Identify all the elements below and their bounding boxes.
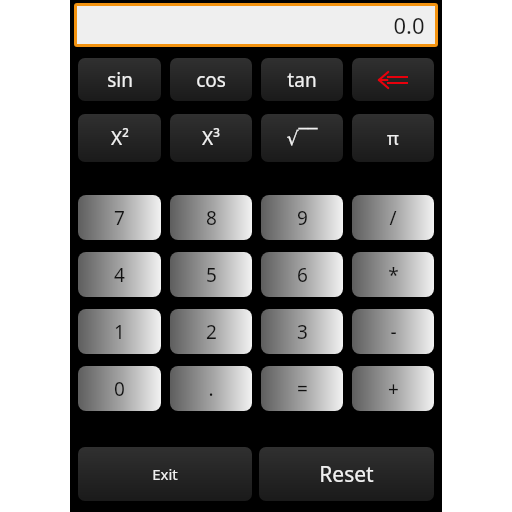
staticText: 9 <box>297 205 308 231</box>
staticText: 7 <box>114 205 125 231</box>
button[interactable]: sin <box>78 58 161 101</box>
button[interactable]: 4 <box>78 252 161 297</box>
button[interactable]: 9 <box>261 195 343 240</box>
button[interactable]: tan <box>261 58 343 101</box>
button[interactable]: X² <box>78 114 161 162</box>
button[interactable]: . <box>170 366 252 411</box>
staticText: Exit <box>152 464 178 484</box>
staticText: √¯¯ <box>286 125 318 151</box>
staticText: + <box>388 376 399 402</box>
staticText: 5 <box>206 262 217 288</box>
button[interactable]: π <box>352 114 434 162</box>
staticText: 2 <box>206 319 217 345</box>
staticText: sin <box>107 67 133 93</box>
button[interactable]: = <box>261 366 343 411</box>
staticText: π <box>387 126 399 151</box>
button[interactable]: 2 <box>170 309 252 354</box>
button[interactable]: / <box>352 195 434 240</box>
staticText: * <box>388 262 399 288</box>
staticText: cos <box>196 67 226 93</box>
staticText: / <box>389 205 397 231</box>
button[interactable]: √¯¯ <box>261 114 343 162</box>
staticText: 8 <box>206 205 217 231</box>
staticText: 0 <box>114 376 125 402</box>
button[interactable]: Backspace <box>352 58 434 101</box>
staticText: 3 <box>297 319 308 345</box>
staticText: X³ <box>202 125 220 151</box>
staticText: X² <box>111 125 129 151</box>
button[interactable]: 3 <box>261 309 343 354</box>
button[interactable]: * <box>352 252 434 297</box>
button[interactable]: 8 <box>170 195 252 240</box>
staticText: 1 <box>114 319 125 345</box>
button[interactable]: cos <box>170 58 252 101</box>
button[interactable]: X³ <box>170 114 252 162</box>
button[interactable]: 1 <box>78 309 161 354</box>
staticText: = <box>297 376 308 402</box>
button[interactable]: 0 <box>78 366 161 411</box>
button[interactable]: + <box>352 366 434 411</box>
button[interactable]: 6 <box>261 252 343 297</box>
button[interactable]: 7 <box>78 195 161 240</box>
button[interactable]: Reset <box>259 447 434 501</box>
button[interactable]: 5 <box>170 252 252 297</box>
staticText: 6 <box>297 262 308 288</box>
staticText: 0.0 <box>393 10 425 40</box>
button[interactable]: - <box>352 309 434 354</box>
staticText: 4 <box>114 262 125 288</box>
staticText: tan <box>287 67 317 93</box>
staticText: Reset <box>319 460 374 489</box>
staticText: - <box>390 319 397 345</box>
staticText: . <box>208 376 214 402</box>
button[interactable]: Exit <box>78 447 252 501</box>
